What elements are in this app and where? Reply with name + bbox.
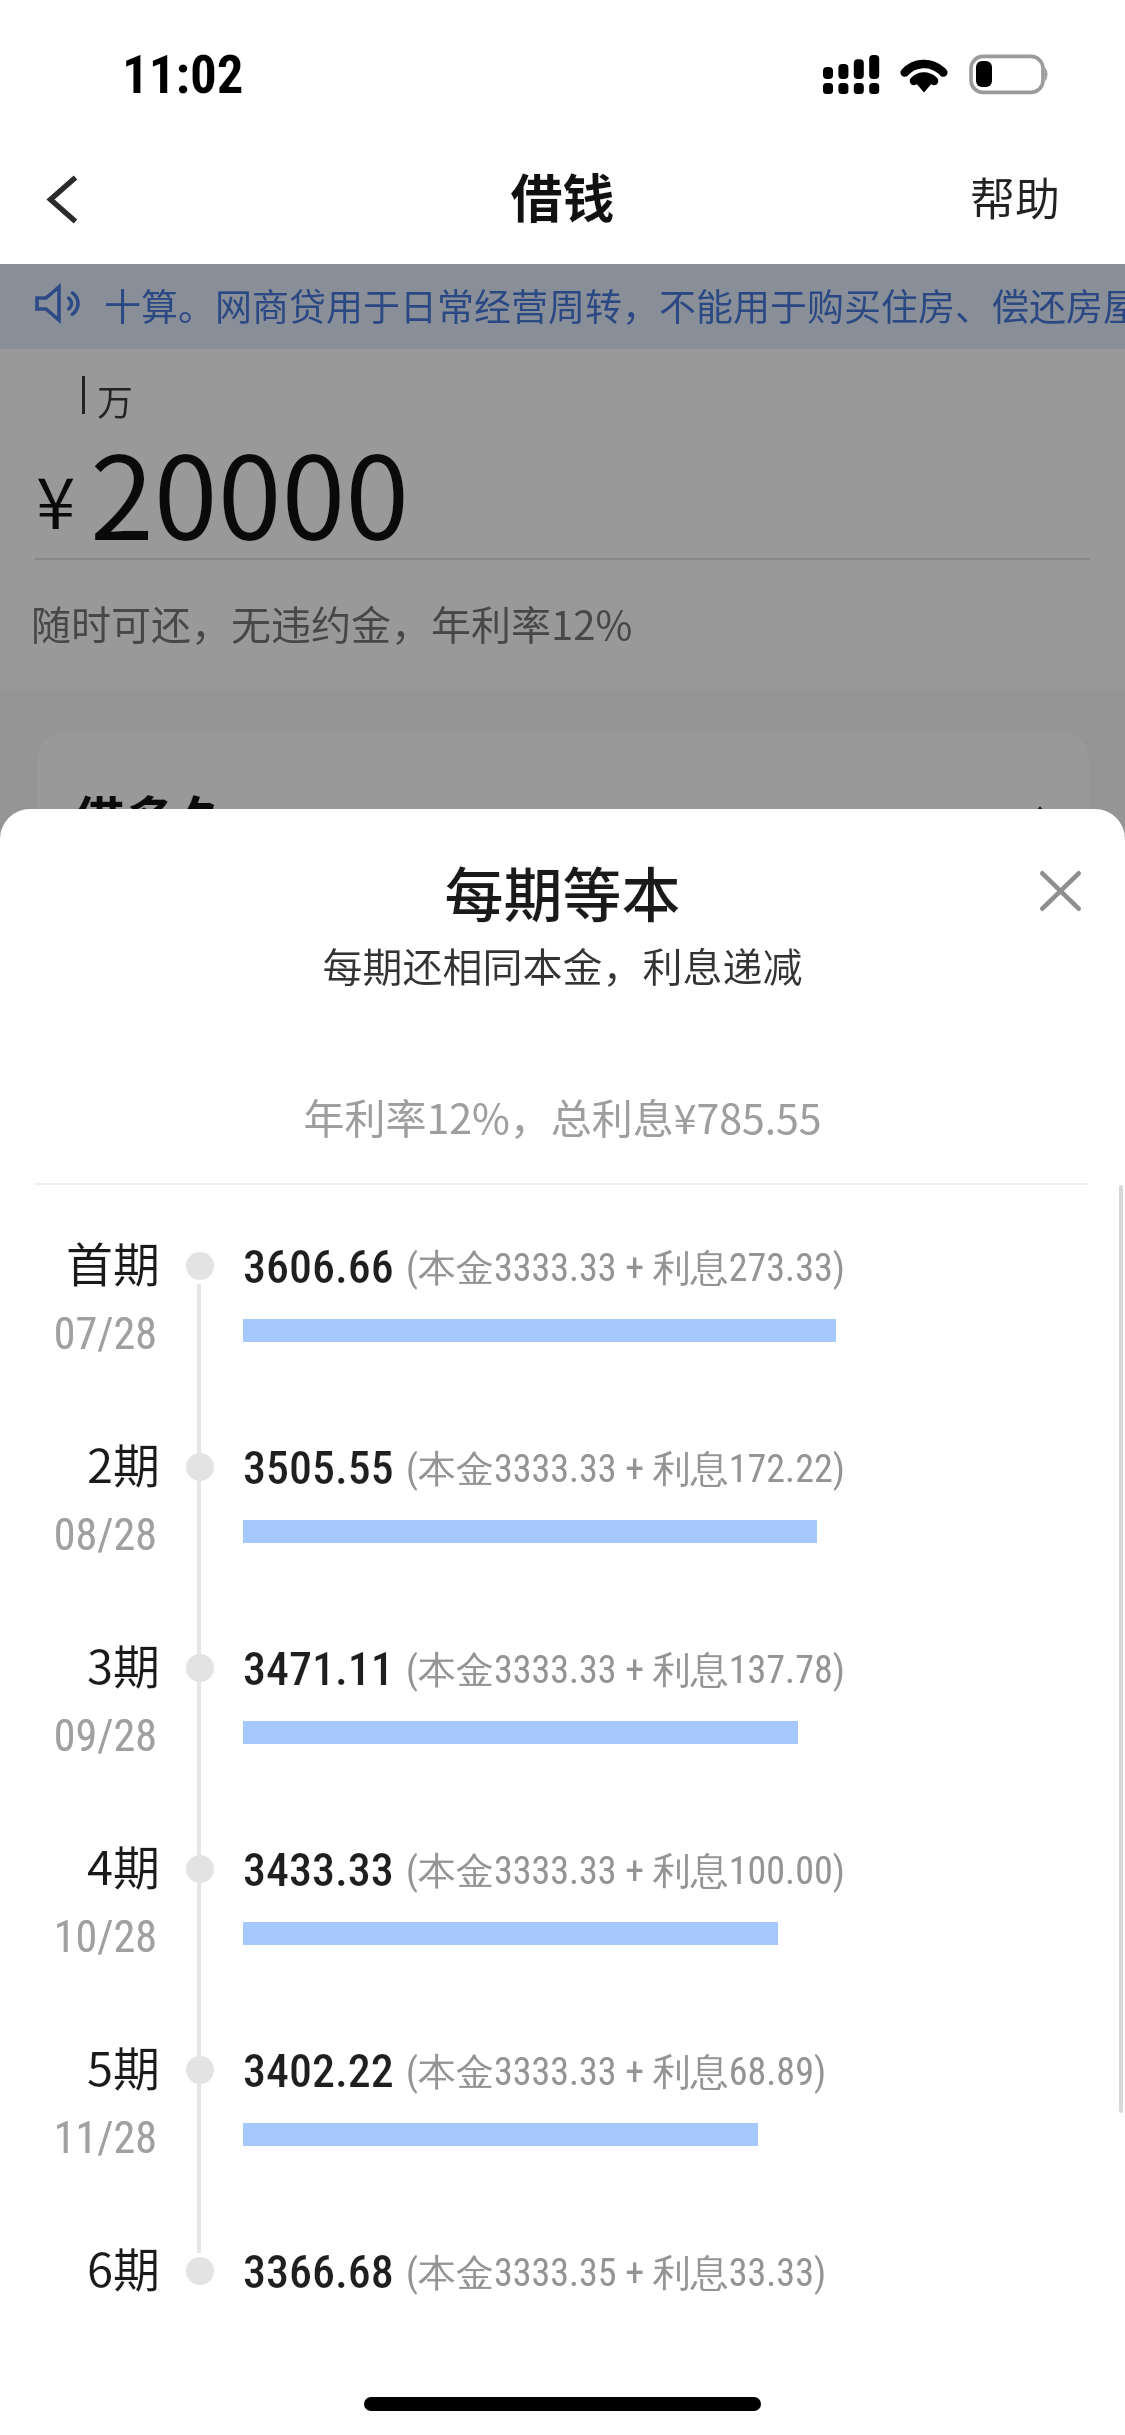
button[interactable]: 首期	[0, 1208, 1125, 1388]
staticText: 5期	[0, 2031, 160, 2099]
button[interactable]: 2期	[0, 1409, 1125, 1589]
staticText: 随时可还，无违约金，年利率12%	[31, 594, 633, 652]
staticText: (本金3333.33 + 利息273.33)	[406, 1244, 845, 1292]
staticText: (本金3333.33 + 利息172.22)	[406, 1445, 845, 1493]
staticText: 6期	[0, 2232, 160, 2300]
staticText: 3433.33	[243, 1843, 394, 1897]
button[interactable]: 借多久	[37, 732, 1089, 1152]
staticText: 07/28	[0, 1308, 157, 1360]
staticText: 3505.55	[243, 1441, 394, 1495]
button[interactable]: 3期	[0, 1610, 1125, 1790]
staticText: 2期	[0, 1428, 160, 1496]
staticText: 借钱	[0, 158, 1125, 233]
staticText: 08/28	[0, 1509, 157, 1561]
staticText: (本金3333.33 + 利息137.78)	[406, 1646, 845, 1694]
button[interactable]: Close	[1012, 852, 1112, 952]
staticText: 10/28	[0, 1911, 157, 1963]
staticText: 年利率12%，总利息¥785.55	[0, 1086, 1125, 1145]
staticText: 3366.68	[243, 2245, 394, 2299]
staticText: 20000	[90, 407, 410, 574]
staticText: 借多久	[73, 780, 230, 855]
staticText: 每期等本	[0, 849, 1125, 934]
button[interactable]: 6期	[0, 2213, 1125, 2303]
staticText: 3471.11	[243, 1642, 394, 1696]
staticText: 11:02	[122, 44, 244, 106]
button[interactable]: 帮助	[948, 152, 1083, 241]
staticText: 3期	[0, 1629, 160, 1697]
staticText: 09/28	[0, 1710, 157, 1762]
staticText: (本金3333.35 + 利息33.33)	[406, 2249, 827, 2297]
staticText: ¥	[36, 447, 76, 550]
button[interactable]: 5期	[0, 2012, 1125, 2192]
staticText: 3402.22	[243, 2044, 394, 2098]
button[interactable]: 4期	[0, 1811, 1125, 1991]
staticText: (本金3333.33 + 利息68.89)	[406, 2048, 827, 2096]
staticText: (本金3333.33 + 利息100.00)	[406, 1847, 845, 1895]
staticText: 11/28	[0, 2112, 157, 2164]
staticText: 帮助	[970, 164, 1061, 229]
staticText: 十算。网商贷用于日常经营周转，不能用于购买住房、偿还房屋	[104, 278, 1125, 332]
staticText: 首期	[0, 1227, 160, 1295]
staticText: 4期	[0, 1830, 160, 1898]
button[interactable]: Back	[6, 140, 116, 250]
staticText: 3606.66	[243, 1240, 394, 1294]
staticText: 万	[97, 374, 134, 426]
staticText: 每期还相同本金，利息递减	[0, 936, 1125, 994]
